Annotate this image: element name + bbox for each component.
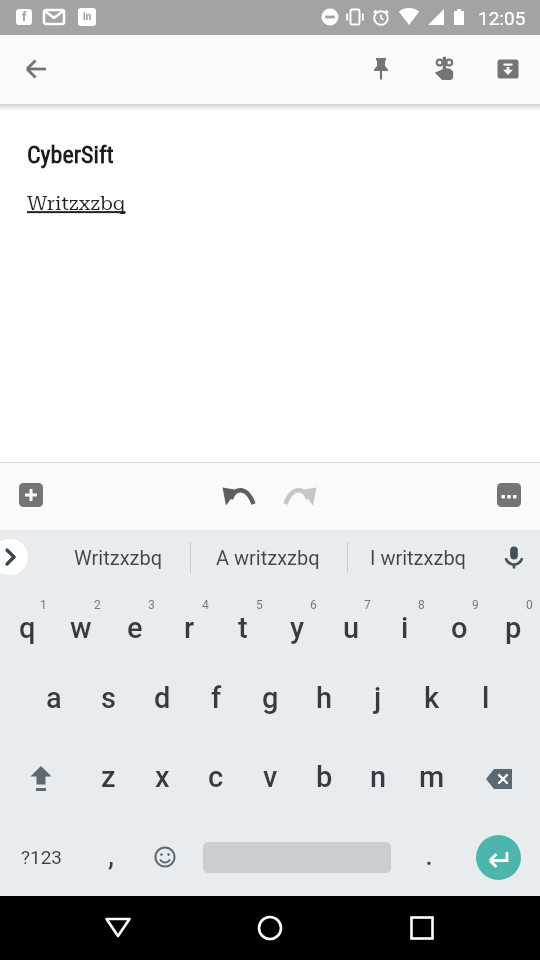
button[interactable] (459, 740, 540, 818)
staticText: A writzxzbq (216, 546, 320, 569)
button[interactable] (246, 904, 294, 952)
staticText: f (22, 10, 27, 24)
staticText: r (184, 611, 195, 645)
button[interactable]: Writzxzbq (53, 530, 183, 585)
staticText: 4 (202, 598, 209, 612)
staticText: 8 (418, 598, 425, 612)
button[interactable]: d (135, 659, 189, 737)
staticText: 6 (310, 598, 317, 612)
staticText: a (46, 681, 62, 715)
button[interactable]: m (405, 738, 459, 816)
staticText: 12:05 (478, 7, 526, 29)
staticText: in (83, 11, 92, 23)
staticText: 2 (94, 598, 101, 612)
button[interactable] (0, 740, 81, 818)
button[interactable]: I writzxzbq (355, 530, 480, 585)
staticText: n (370, 760, 387, 794)
staticText: i (401, 611, 409, 645)
staticText: Writzxzbq (27, 191, 126, 214)
button[interactable]: f (189, 659, 243, 737)
button[interactable] (278, 472, 324, 518)
button[interactable]: n (351, 738, 405, 816)
button[interactable] (486, 472, 532, 518)
button[interactable]: l (459, 659, 513, 737)
button[interactable]: w (54, 589, 108, 666)
staticText: y (290, 611, 305, 645)
button[interactable]: p (486, 589, 540, 666)
button[interactable] (357, 45, 405, 93)
button[interactable] (456, 818, 540, 896)
button[interactable] (0, 539, 28, 575)
staticText: ?123 (21, 846, 63, 868)
button[interactable]: b (297, 738, 351, 816)
button[interactable] (215, 472, 261, 518)
button[interactable]: q (0, 589, 54, 666)
button[interactable]: Writzxzbq (27, 188, 227, 216)
button[interactable]: v (243, 738, 297, 816)
staticText: o (451, 611, 468, 645)
button[interactable] (192, 818, 402, 896)
staticText: q (19, 611, 36, 645)
staticText: Writzxzbq (74, 546, 163, 569)
button[interactable]: A writzxzbq (198, 530, 338, 585)
staticText: CyberSift (27, 141, 114, 169)
staticText: 9 (472, 598, 479, 612)
staticText: l (482, 681, 490, 715)
staticText: 3 (148, 598, 155, 612)
staticText: w (70, 611, 92, 645)
staticText: I writzxzbq (370, 546, 466, 569)
button[interactable] (492, 539, 536, 577)
staticText: g (262, 681, 279, 715)
button[interactable]: k (405, 659, 459, 737)
button[interactable] (420, 45, 468, 93)
button[interactable]: a (27, 659, 81, 737)
button[interactable] (398, 904, 446, 952)
staticText: 1 (40, 598, 47, 612)
button[interactable]: , (84, 815, 138, 893)
staticText: h (316, 681, 333, 715)
staticText: c (208, 760, 224, 794)
staticText: p (505, 611, 522, 645)
staticText: f (211, 681, 222, 715)
button[interactable]: y (270, 589, 324, 666)
staticText: m (419, 760, 445, 794)
button[interactable]: s (81, 659, 135, 737)
button[interactable] (12, 45, 60, 93)
button[interactable]: t (216, 589, 270, 666)
button[interactable]: j (351, 659, 405, 737)
staticText: j (374, 681, 382, 715)
staticText: b (316, 760, 333, 794)
button[interactable]: e (108, 589, 162, 666)
button[interactable] (94, 904, 142, 952)
staticText: x (155, 760, 170, 794)
button[interactable] (484, 45, 532, 93)
button[interactable]: c (189, 738, 243, 816)
staticText: 7 (364, 598, 371, 612)
staticText: s (101, 681, 116, 715)
staticText: t (238, 611, 248, 645)
button[interactable]: o (432, 589, 486, 666)
button[interactable]: i (378, 589, 432, 666)
staticText: e (127, 611, 143, 645)
button[interactable]: z (81, 738, 135, 816)
staticText: d (154, 681, 171, 715)
button[interactable]: . (402, 815, 456, 893)
staticText: u (343, 611, 360, 645)
staticText: v (263, 760, 278, 794)
staticText: 5 (256, 598, 263, 612)
button[interactable] (138, 818, 192, 896)
button[interactable]: x (135, 738, 189, 816)
button[interactable]: r (162, 589, 216, 666)
staticText: z (101, 760, 116, 794)
staticText: , (108, 836, 115, 872)
button[interactable]: h (297, 659, 351, 737)
button[interactable]: ?123 (0, 818, 84, 896)
staticText: 0 (526, 598, 533, 612)
staticText: k (424, 681, 440, 715)
button[interactable]: u (324, 589, 378, 666)
button[interactable]: g (243, 659, 297, 737)
staticText: . (425, 836, 434, 872)
button[interactable] (8, 472, 54, 518)
